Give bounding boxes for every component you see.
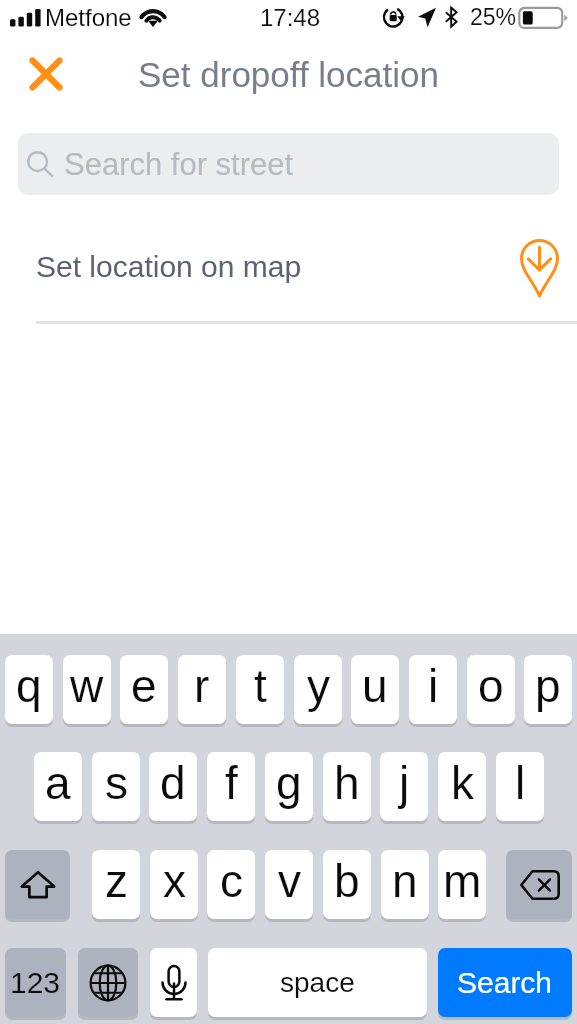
button[interactable]: l: [496, 752, 544, 821]
staticText: z: [105, 855, 128, 906]
button[interactable]: Close: [18, 46, 74, 102]
button[interactable]: a: [34, 752, 82, 821]
button[interactable]: k: [438, 752, 486, 821]
button[interactable]: w: [63, 655, 111, 724]
staticText: h: [334, 757, 360, 808]
button[interactable]: Set location on map: [0, 232, 577, 321]
button[interactable]: q: [5, 655, 53, 724]
staticText: d: [160, 757, 186, 808]
staticText: Set location on map: [36, 250, 302, 284]
button[interactable]: b: [323, 850, 371, 919]
button[interactable]: n: [381, 850, 429, 919]
staticText: r: [194, 660, 210, 711]
staticText: 25%: [470, 4, 517, 30]
button[interactable]: g: [265, 752, 313, 821]
button[interactable]: Search: [438, 948, 572, 1017]
staticText: o: [478, 660, 504, 711]
button[interactable]: Backspace: [506, 850, 572, 919]
staticText: 123: [10, 966, 61, 1000]
button[interactable]: t: [236, 655, 284, 724]
staticText: g: [276, 757, 302, 808]
button[interactable]: p: [524, 655, 572, 724]
staticText: y: [307, 660, 330, 711]
button[interactable]: h: [323, 752, 371, 821]
staticText: w: [70, 660, 104, 711]
staticText: u: [362, 660, 388, 711]
staticText: space: [280, 967, 355, 998]
staticText: c: [220, 855, 243, 906]
staticText: b: [334, 855, 360, 906]
button[interactable]: j: [380, 752, 428, 821]
staticText: q: [16, 660, 42, 711]
button[interactable]: Shift: [5, 850, 70, 919]
button[interactable]: Dictate: [150, 948, 197, 1017]
button[interactable]: o: [467, 655, 515, 724]
staticText: e: [131, 660, 157, 711]
button[interactable]: s: [92, 752, 140, 821]
button[interactable]: x: [150, 850, 198, 919]
button[interactable]: y: [294, 655, 342, 724]
staticText: k: [451, 757, 474, 808]
button[interactable]: u: [351, 655, 399, 724]
staticText: m: [443, 855, 482, 906]
staticText: s: [105, 757, 128, 808]
button[interactable]: e: [120, 655, 168, 724]
button[interactable]: i: [409, 655, 457, 724]
button[interactable]: m: [438, 850, 486, 919]
staticText: a: [45, 757, 71, 808]
staticText: x: [163, 855, 186, 906]
staticText: Search for street: [64, 147, 294, 182]
button[interactable]: space: [208, 948, 427, 1017]
staticText: j: [399, 757, 410, 808]
staticText: p: [535, 660, 561, 711]
button[interactable]: d: [149, 752, 197, 821]
staticText: 17:48: [260, 4, 321, 31]
staticText: t: [254, 660, 267, 711]
staticText: f: [225, 757, 238, 808]
button[interactable]: z: [92, 850, 140, 919]
staticText: i: [428, 660, 439, 711]
staticText: v: [278, 855, 301, 906]
staticText: Search: [457, 966, 553, 1000]
button[interactable]: c: [207, 850, 255, 919]
staticText: n: [392, 855, 418, 906]
staticText: l: [515, 757, 526, 808]
button[interactable]: r: [178, 655, 226, 724]
button[interactable]: Switch keyboard: [78, 948, 138, 1017]
button[interactable]: 123: [5, 948, 66, 1017]
button[interactable]: Search for street: [18, 133, 559, 195]
button[interactable]: f: [207, 752, 255, 821]
staticText: Metfone: [45, 4, 132, 31]
staticText: Set dropoff location: [138, 55, 439, 94]
button[interactable]: v: [265, 850, 313, 919]
